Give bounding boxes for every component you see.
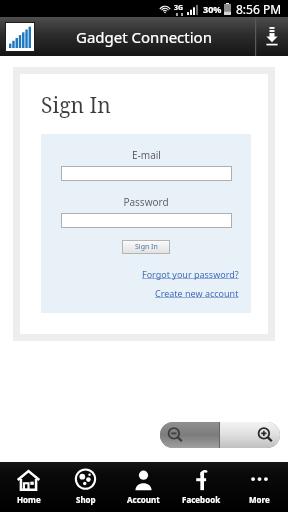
button[interactable]: Shop: [57, 462, 114, 512]
staticText: More: [249, 494, 270, 505]
button[interactable]: Create new account: [155, 287, 239, 299]
button[interactable]: Zoom out: [160, 422, 219, 448]
staticText: Create new account: [155, 287, 239, 299]
staticText: Home: [17, 494, 41, 505]
button[interactable]: Download: [255, 17, 288, 56]
staticText: 3G: [174, 3, 184, 13]
staticText: Sign In: [135, 242, 158, 252]
button[interactable]: Sign In: [122, 240, 170, 254]
button[interactable]: Gadget Connection logo: [5, 22, 35, 52]
button[interactable]: Text field: [61, 166, 232, 181]
staticText: Facebook: [182, 494, 221, 505]
staticText: E-mail: [132, 148, 161, 162]
staticText: 8:56 PM: [236, 1, 282, 17]
button[interactable]: Forgot your password?: [142, 268, 239, 280]
button[interactable]: Text field: [61, 213, 232, 228]
staticText: 30%: [203, 3, 222, 15]
staticText: Gadget Connection: [76, 27, 212, 47]
staticText: Shop: [76, 494, 96, 505]
button[interactable]: Home: [0, 462, 57, 512]
staticText: Sign In: [41, 91, 111, 120]
staticText: Forgot your password?: [142, 268, 239, 280]
button[interactable]: Facebook: [172, 462, 230, 512]
button[interactable]: More: [230, 462, 288, 512]
staticText: Account: [127, 494, 160, 505]
button[interactable]: Account: [114, 462, 172, 512]
staticText: Password: [123, 195, 169, 209]
button[interactable]: Zoom in: [220, 422, 280, 448]
